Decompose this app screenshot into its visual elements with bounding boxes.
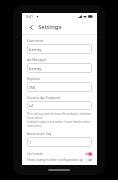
staticText: Username [27,38,44,43]
staticText: Generic Api Endpoint [27,95,61,100]
staticText: Replicas [27,76,41,81]
button[interactable]: bernty [27,63,92,73]
button[interactable]: v2 [27,101,92,110]
button[interactable]: Back [26,22,36,32]
staticText: Annotation Tag [27,131,52,136]
staticText: Ad Manager [27,57,47,62]
button[interactable]: 1 [27,137,92,147]
button[interactable]: Let it work [27,150,92,157]
staticText: 9:41 [26,14,34,19]
staticText: bernty [29,47,42,52]
button[interactable]: bernty [27,44,92,54]
staticText: Settings [38,23,62,31]
staticText: bernty [29,66,42,71]
button[interactable]: Show changes when configuration go [27,158,92,162]
staticText: 1 [29,140,32,145]
staticText: v2 [29,103,34,108]
staticText: /56 [29,85,36,90]
staticText: Show changes when configuration go [27,158,85,162]
staticText: Let it work [27,152,85,156]
staticText: This setting controls how the endpoint r… [27,112,92,128]
button[interactable]: /56 [27,82,92,92]
